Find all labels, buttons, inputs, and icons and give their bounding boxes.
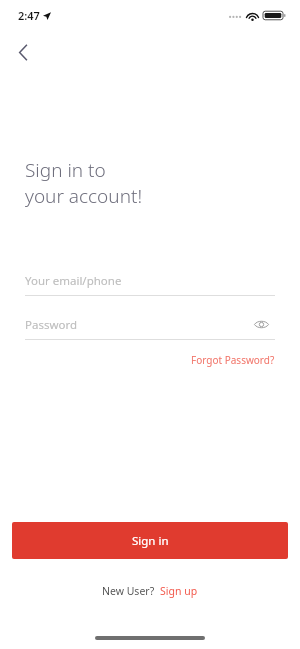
staticText: Your email/phone xyxy=(25,273,122,289)
button[interactable]: Your email/phone xyxy=(25,266,275,296)
staticText: 2:47 xyxy=(18,8,40,23)
staticText: Sign up xyxy=(160,584,198,598)
staticText: Sign in xyxy=(132,533,169,549)
button[interactable]: Sign up xyxy=(160,584,198,598)
staticText: Sign in to xyxy=(25,157,106,183)
staticText: Password xyxy=(25,317,78,333)
button[interactable]: Forgot Password? xyxy=(178,351,275,369)
staticText: New User? xyxy=(102,584,155,598)
button[interactable]: Back xyxy=(8,38,38,66)
staticText: your account! xyxy=(25,183,143,209)
button[interactable]: Sign in xyxy=(12,522,288,559)
button[interactable]: Show password xyxy=(247,310,275,338)
button[interactable]: Password xyxy=(25,310,275,340)
staticText: Forgot Password? xyxy=(191,353,275,367)
